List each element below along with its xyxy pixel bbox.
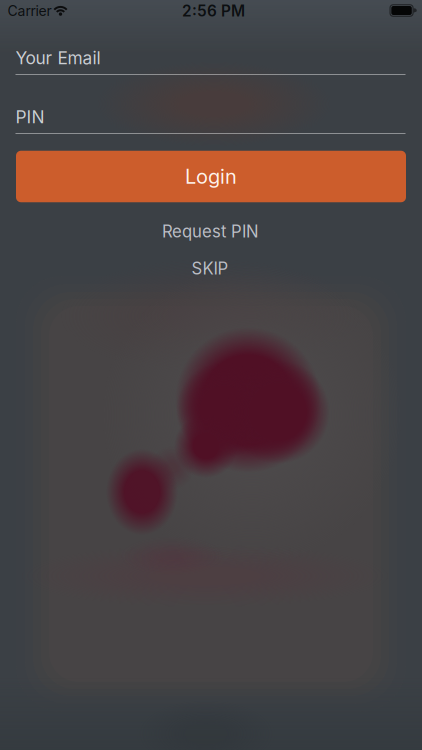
staticText: Your Email xyxy=(15,47,100,68)
button[interactable]: SKIP xyxy=(191,258,228,279)
button[interactable]: Login xyxy=(16,151,406,202)
staticText: Carrier xyxy=(7,2,51,19)
button[interactable]: Your Email xyxy=(15,50,405,76)
button[interactable]: PIN xyxy=(15,109,405,135)
staticText: SKIP xyxy=(191,258,228,279)
staticText: Login xyxy=(185,164,237,189)
staticText: 2:56 PM xyxy=(182,2,245,20)
staticText: Request PIN xyxy=(162,221,259,242)
button[interactable]: Request PIN xyxy=(162,221,259,242)
staticText: PIN xyxy=(15,106,44,127)
